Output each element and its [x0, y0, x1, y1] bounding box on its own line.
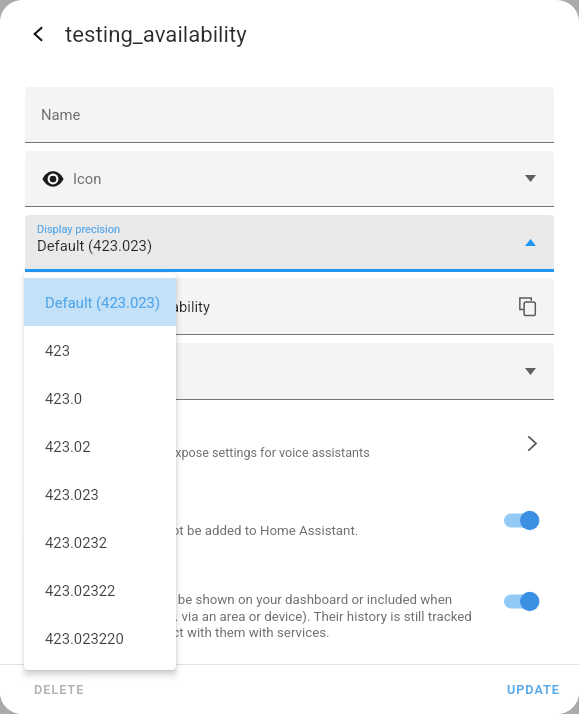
- staticText: Icon: [73, 170, 102, 187]
- staticText: Hidden entities will not be shown on you…: [40, 592, 478, 640]
- staticText: 423.02: [45, 438, 91, 455]
- staticText: 423.02322: [45, 582, 116, 599]
- button[interactable]: Copy entity id: [514, 293, 540, 319]
- button[interactable]: UPDATE: [497, 674, 570, 705]
- staticText: 423.023: [45, 486, 99, 503]
- button[interactable]: sensor.testing_availability: [25, 278, 554, 334]
- staticText: 423.0232: [45, 534, 108, 551]
- staticText: DELETE: [34, 682, 85, 697]
- button[interactable]: 423.02322: [24, 566, 176, 614]
- button[interactable]: Name: [25, 87, 554, 142]
- staticText: UPDATE: [507, 682, 560, 697]
- staticText: Name: [41, 106, 81, 123]
- button[interactable]: Toggle: [504, 591, 540, 612]
- button[interactable]: DELETE: [24, 674, 95, 705]
- button[interactable]: Default (423.023): [24, 278, 176, 326]
- button[interactable]: Voice assistants settings: [519, 430, 545, 456]
- button[interactable]: 423.0: [24, 374, 176, 422]
- staticText: 423.023220: [45, 630, 124, 647]
- button[interactable]: 423.023220: [24, 614, 176, 662]
- staticText: Default (423.023): [45, 294, 161, 311]
- button[interactable]: Display precision: [25, 215, 554, 269]
- staticText: testing_availability: [65, 21, 247, 47]
- staticText: Disabled entities will not be added to H…: [40, 523, 359, 539]
- staticText: sensor.testing_availability: [41, 298, 210, 315]
- button[interactable]: Toggle: [504, 510, 540, 531]
- button[interactable]: 423.023: [24, 470, 176, 518]
- button[interactable]: 423.02: [24, 422, 176, 470]
- button[interactable]: 423: [24, 326, 176, 374]
- button[interactable]: Icon: [25, 151, 554, 206]
- button[interactable]: Back: [23, 19, 53, 49]
- button[interactable]: Area: [25, 343, 554, 399]
- button[interactable]: 423.0232: [24, 518, 176, 566]
- staticText: Default (423.023): [37, 237, 153, 254]
- staticText: Visible: [40, 570, 83, 587]
- staticText: 423: [45, 342, 70, 359]
- staticText: 423.0: [45, 390, 83, 407]
- staticText: Expose settings for voice assistants: [168, 445, 370, 460]
- staticText: Display precision: [37, 223, 121, 236]
